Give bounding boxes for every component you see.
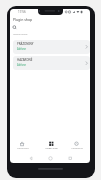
staticText: Dashboard xyxy=(17,147,29,150)
staticText: PRÁZDNINY xyxy=(17,42,34,46)
staticText: 17:56 xyxy=(18,10,26,14)
button[interactable]: Dashboard xyxy=(12,140,33,150)
button[interactable]: PRÁZDNINY xyxy=(13,40,90,54)
button[interactable]: Plugin shop xyxy=(40,140,62,150)
staticText: Plugin shop xyxy=(45,147,58,150)
button[interactable]: HAZARDNÉ xyxy=(13,56,90,70)
button[interactable] xyxy=(11,24,19,32)
staticText: Nastavenia xyxy=(71,147,83,150)
staticText: Plugin shop xyxy=(13,17,33,22)
staticText: HAZARDNÉ xyxy=(17,58,33,62)
staticText: Aktívne xyxy=(17,63,27,67)
staticText: Aktívne xyxy=(17,47,27,51)
button[interactable]: Nastavenia xyxy=(67,140,87,150)
staticText: Aktívne funkcie xyxy=(13,33,28,36)
